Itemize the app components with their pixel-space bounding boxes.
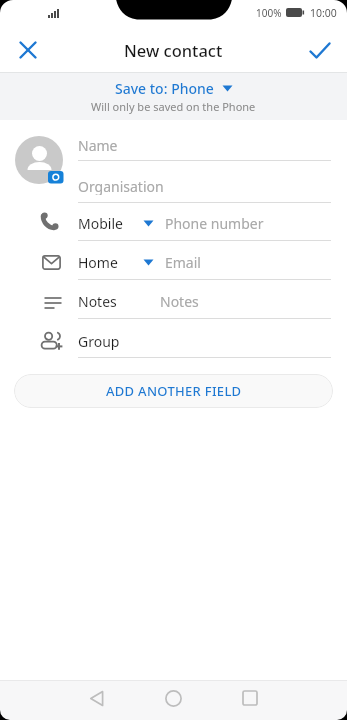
button[interactable] (12, 34, 44, 66)
button[interactable] (15, 135, 65, 185)
button[interactable]: Mobile (78, 214, 140, 232)
staticText: 100% (256, 6, 282, 18)
button[interactable] (159, 684, 187, 712)
button[interactable]: ADD ANOTHER FIELD (14, 374, 333, 408)
staticText: Name (78, 136, 118, 154)
button[interactable]: Name (78, 136, 298, 154)
staticText: Email (165, 253, 201, 271)
button[interactable]: Organisation (78, 177, 298, 195)
button[interactable] (236, 684, 264, 712)
staticText: ADD ANOTHER FIELD (106, 382, 242, 400)
staticText: Save to: Phone (115, 79, 214, 98)
button[interactable]: Group (78, 332, 168, 350)
staticText: Home (78, 253, 118, 271)
button[interactable] (82, 684, 110, 712)
button[interactable]: Notes (78, 292, 140, 310)
button[interactable]: Save to: Phone (0, 79, 347, 98)
staticText: Phone number (165, 214, 264, 232)
staticText: Organisation (78, 177, 164, 195)
button[interactable] (303, 34, 337, 66)
staticText: Will only be saved on the Phone (91, 99, 256, 114)
button[interactable]: Phone number (165, 214, 325, 232)
staticText: New contact (124, 39, 223, 61)
staticText: Mobile (78, 214, 123, 232)
staticText: Group (78, 332, 120, 350)
button[interactable]: Email (165, 253, 285, 271)
staticText: Notes (78, 292, 117, 310)
staticText: Notes (160, 292, 199, 310)
staticText: 10:00 (310, 6, 337, 18)
button[interactable]: Home (78, 253, 140, 271)
